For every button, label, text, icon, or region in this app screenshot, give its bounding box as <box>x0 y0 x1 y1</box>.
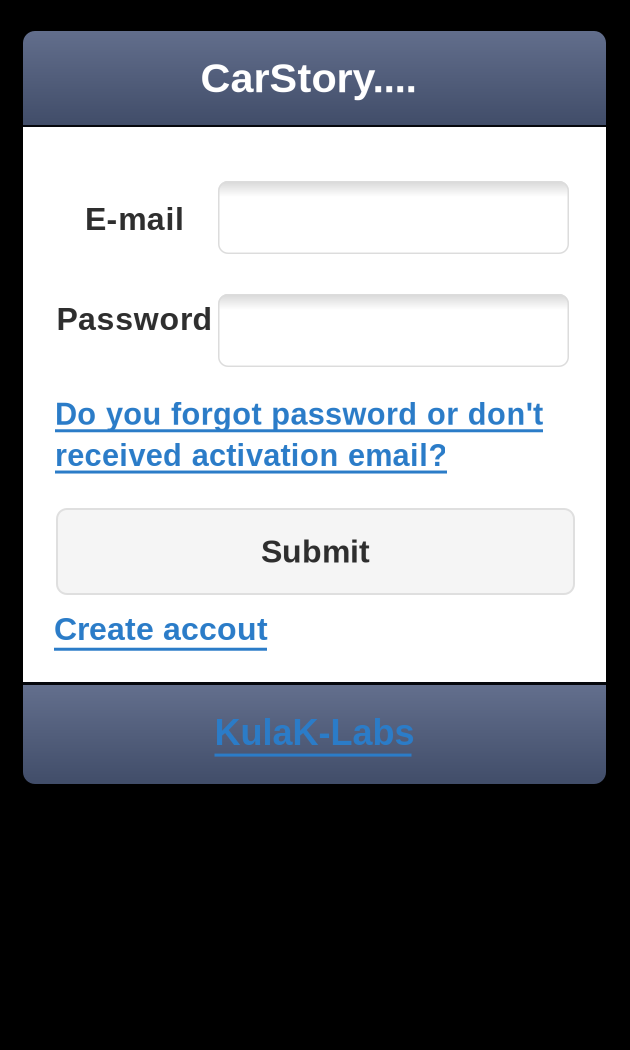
button[interactable]: Submit <box>57 509 574 594</box>
staticText: Do you forgot password or don't <box>55 397 543 431</box>
button[interactable]: KulaK-Labs <box>214 712 414 757</box>
staticText: E-mail <box>85 201 184 237</box>
staticText: received activation email? <box>55 438 447 473</box>
staticText: Password <box>56 301 213 337</box>
staticText: Submit <box>261 534 370 569</box>
staticText: CarStory.... <box>200 55 416 101</box>
button[interactable]: Create accout <box>54 611 268 651</box>
staticText: KulaK-Labs <box>214 712 414 753</box>
staticText: Create accout <box>54 611 268 647</box>
button[interactable]: Do you forgot password or don't <box>55 397 543 473</box>
